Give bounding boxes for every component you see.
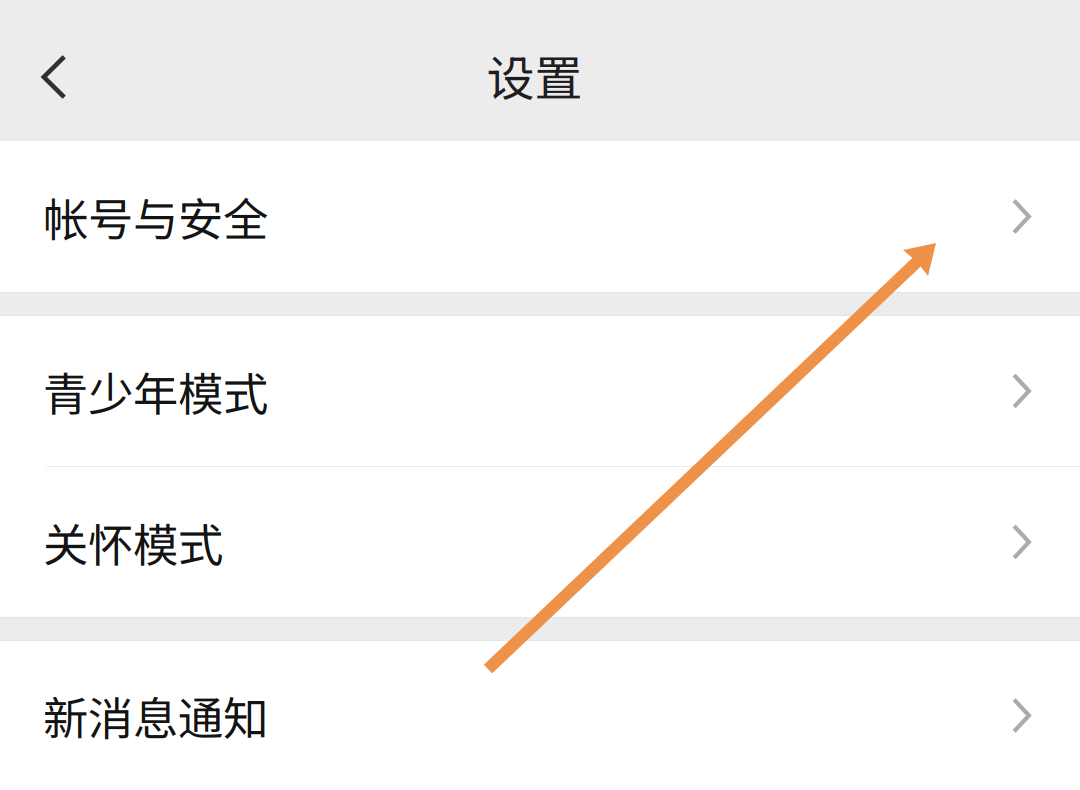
staticText: 关怀模式 <box>43 509 223 575</box>
staticText: 青少年模式 <box>43 358 268 424</box>
button[interactable]: 新消息通知 <box>0 641 1080 790</box>
staticText: 新消息通知 <box>43 683 268 748</box>
staticText: 设置 <box>486 40 582 110</box>
button[interactable]: 关怀模式 <box>0 467 1080 617</box>
button[interactable]: 青少年模式 <box>0 316 1080 466</box>
button[interactable]: 帐号与安全 <box>0 141 1080 292</box>
staticText: 帐号与安全 <box>43 184 268 249</box>
button[interactable]: Back <box>0 0 108 141</box>
